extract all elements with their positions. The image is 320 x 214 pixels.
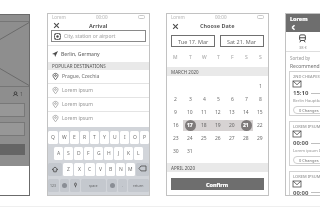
button[interactable]: X: [74, 163, 84, 176]
staticText: 3: [189, 96, 192, 103]
button[interactable]: W: [59, 131, 69, 144]
button[interactable]: 2ND CHEAPEST OPTION: [289, 71, 320, 116]
staticText: Lorem: [290, 15, 308, 22]
button[interactable]: S: [64, 147, 73, 160]
staticText: Z: [67, 166, 70, 173]
button[interactable]: Tue 17. Mar: [171, 35, 215, 47]
button[interactable]: Lorem ipsum: [52, 84, 145, 97]
button[interactable]: 0 Changes ▾: [293, 156, 320, 164]
staticText: Prague, Czechia: [62, 73, 100, 80]
staticText: 2: [174, 96, 177, 103]
button[interactable]: Prague, Czechia: [52, 70, 145, 83]
button[interactable]: V: [96, 163, 105, 176]
button[interactable]: Lorem ipsum: [52, 98, 145, 111]
staticText: LOREM IPSUM DOLOR S: [293, 174, 320, 179]
button[interactable]: T: [90, 131, 99, 144]
button[interactable]: 0 Changes ▾: [293, 106, 320, 114]
staticText: W: [62, 134, 67, 141]
staticText: D: [77, 150, 81, 157]
staticText: W: [202, 54, 207, 61]
button[interactable]: Back: [290, 24, 297, 31]
staticText: MARCH 2020: [171, 69, 199, 75]
button[interactable]: M: [126, 163, 135, 176]
button[interactable]: LOREM IPSUM DOLOR S: [289, 121, 320, 166]
button[interactable]: E: [70, 131, 79, 144]
staticText: 18: [201, 122, 207, 129]
button[interactable]: Lorem ipsum: [52, 112, 145, 125]
staticText: Sat 21. Mar: [227, 38, 257, 45]
staticText: 7: [245, 96, 248, 103]
button[interactable]: Close: [171, 22, 180, 31]
button[interactable]: G: [94, 147, 103, 160]
button[interactable]: [48, 163, 62, 176]
staticText: M: [128, 166, 133, 173]
button[interactable]: B: [106, 163, 115, 176]
staticText: 16: [173, 122, 179, 129]
button[interactable]: P: [140, 131, 149, 144]
staticText: N: [119, 166, 123, 173]
button[interactable]: [107, 179, 117, 192]
button[interactable]: Z: [63, 163, 73, 176]
button[interactable]: J: [114, 147, 123, 160]
staticText: 15: [257, 109, 263, 116]
staticText: .: [122, 183, 124, 188]
staticText: City, station or airport: [64, 33, 116, 40]
button[interactable]: Berlin, Germany: [52, 46, 145, 62]
staticText: 22: [257, 122, 263, 129]
button[interactable]: U: [110, 131, 119, 144]
button[interactable]: D: [74, 147, 83, 160]
button[interactable]: [136, 163, 149, 176]
button[interactable]: C: [85, 163, 95, 176]
button[interactable]: A: [54, 147, 63, 160]
button[interactable]: L: [134, 147, 143, 160]
staticText: 31: [187, 148, 193, 155]
staticText: 30: [173, 148, 179, 155]
button[interactable]: Q: [48, 131, 58, 144]
staticText: return: [133, 183, 144, 188]
staticText: L: [137, 150, 140, 157]
staticText: 9: [174, 109, 177, 116]
button[interactable]: I: [120, 131, 129, 144]
staticText: 2ND CHEAPEST OPTION: [293, 74, 320, 79]
staticText: 00:00: [96, 14, 108, 20]
button[interactable]: N: [116, 163, 125, 176]
staticText: 38 €: [299, 45, 307, 50]
staticText: A: [57, 150, 61, 157]
staticText: 6: [231, 96, 234, 103]
button[interactable]: O: [130, 131, 139, 144]
staticText: 11: [201, 109, 207, 116]
button[interactable]: [70, 179, 80, 192]
button[interactable]: Transport mode: [285, 32, 320, 51]
staticText: Choose Date: [200, 22, 235, 29]
button[interactable]: Close: [52, 21, 61, 30]
button[interactable]: F: [84, 147, 93, 160]
button[interactable]: Sat 21. Mar: [220, 35, 264, 47]
button[interactable]: Y: [100, 131, 109, 144]
button[interactable]: City, station or airport: [54, 30, 143, 42]
button[interactable]: [60, 179, 69, 192]
staticText: S: [67, 150, 70, 157]
staticText: Lorem: [52, 14, 66, 20]
button[interactable]: space: [81, 179, 106, 192]
button[interactable]: [0, 122, 25, 136]
staticText: V: [99, 166, 103, 173]
staticText: T: [217, 54, 220, 61]
staticText: 4: [203, 96, 206, 103]
staticText: C: [88, 166, 92, 173]
button[interactable]: Confirm: [171, 178, 264, 190]
staticText: Lorem ipsum Dolor sit: [293, 148, 320, 153]
button[interactable]: return: [128, 179, 149, 192]
button[interactable]: H: [104, 147, 113, 160]
button[interactable]: LOREM IPSUM DOLOR S: [289, 171, 320, 196]
staticText: T: [189, 54, 192, 61]
button[interactable]: [0, 103, 25, 117]
button[interactable]: 123: [48, 179, 59, 192]
staticText: Berlin, Germany: [61, 51, 100, 58]
button[interactable]: R: [80, 131, 89, 144]
button[interactable]: K: [124, 147, 133, 160]
staticText: P: [143, 134, 147, 141]
staticText: Q: [51, 134, 55, 141]
staticText: 15:10: [293, 89, 309, 97]
